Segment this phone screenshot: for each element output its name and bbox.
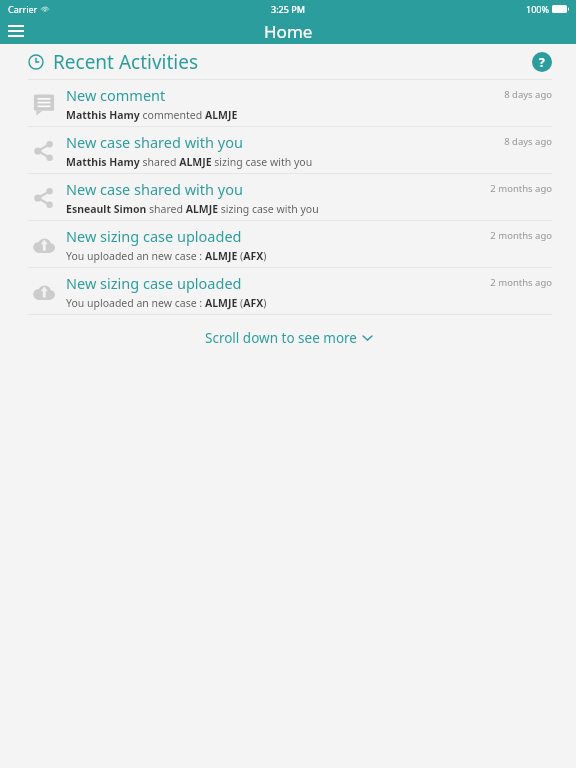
staticText: New sizing case uploaded: [66, 273, 242, 293]
staticText: Matthis Hamy commented ALMJE: [66, 108, 238, 122]
staticText: 2 months ago: [490, 229, 552, 242]
staticText: Carrier: [8, 3, 38, 15]
staticText: Matthis Hamy shared ALMJE sizing case wi…: [66, 155, 313, 169]
staticText: You uploaded an new case : ALMJE (AFX): [66, 296, 267, 310]
button[interactable]: New sizing case uploaded: [0, 221, 576, 268]
button[interactable]: New comment: [0, 80, 576, 127]
staticText: 2 months ago: [490, 182, 552, 195]
staticText: You uploaded an new case : ALMJE (AFX): [66, 249, 267, 263]
staticText: 8 days ago: [504, 88, 552, 101]
staticText: New comment: [66, 85, 166, 105]
staticText: 100%: [526, 3, 549, 15]
button[interactable]: Scroll down to see more: [195, 323, 382, 353]
staticText: New sizing case uploaded: [66, 226, 242, 246]
staticText: 2 months ago: [490, 276, 552, 289]
button[interactable]: Help: [532, 52, 552, 72]
staticText: New case shared with you: [66, 132, 243, 152]
staticText: New case shared with you: [66, 179, 243, 199]
staticText: Home: [264, 20, 313, 43]
staticText: 8 days ago: [504, 135, 552, 148]
staticText: ?: [539, 54, 545, 70]
staticText: Recent Activities: [53, 49, 199, 75]
staticText: 3:25 PM: [271, 3, 305, 15]
button[interactable]: New sizing case uploaded: [0, 268, 576, 315]
button[interactable]: New case shared with you: [0, 174, 576, 221]
staticText: Esneault Simon shared ALMJE sizing case …: [66, 202, 319, 216]
button[interactable]: Open navigation menu: [4, 19, 28, 43]
staticText: Scroll down to see more: [205, 329, 357, 347]
button[interactable]: New case shared with you: [0, 127, 576, 174]
